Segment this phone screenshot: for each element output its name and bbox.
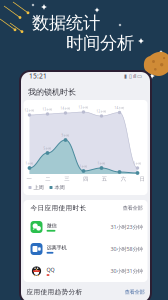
staticText: 时间分析 — [66, 32, 134, 54]
staticText: 14小时 — [60, 107, 70, 110]
staticText: 今日应用使用时长 — [30, 204, 86, 212]
staticText: QQ — [46, 266, 54, 273]
staticText: 13小时 — [42, 108, 52, 111]
staticText: 微信 — [46, 222, 56, 229]
staticText: 12小时 — [24, 109, 34, 112]
button[interactable]: 远离手机 — [23, 238, 147, 260]
staticText: 31小时23分钟 — [110, 223, 142, 231]
button[interactable]: QQ — [23, 260, 147, 282]
staticText: 六 — [121, 176, 126, 182]
staticText: 查看全部 — [122, 205, 142, 211]
staticText: ▮ ▯ ıll ▭ — [124, 72, 142, 80]
staticText: 1小时 — [97, 162, 105, 165]
staticText: 上周 — [33, 184, 43, 191]
staticText: 1小时 — [79, 165, 87, 168]
button[interactable]: 微信 — [23, 216, 147, 238]
staticText: 数据统计 — [32, 12, 100, 34]
staticText: 9小时 — [61, 134, 69, 137]
staticText: 1小时 — [133, 162, 141, 165]
staticText: 一 — [26, 176, 31, 182]
staticText: 本周 — [54, 184, 64, 191]
staticText: 三 — [64, 176, 69, 182]
staticText: 15:21 — [29, 72, 47, 80]
staticText: 应用使用趋势分析 — [26, 288, 82, 296]
staticText: 二 — [45, 176, 50, 182]
staticText: 我的锁机时长 — [28, 87, 76, 97]
staticText: 30小时58分钟 — [110, 245, 142, 253]
staticText: 日 — [139, 176, 144, 182]
staticText: 12小时 — [96, 110, 106, 113]
staticText: 远离手机 — [46, 244, 66, 251]
staticText: 30小时31分钟 — [110, 267, 142, 275]
staticText: 14小时 — [114, 106, 124, 110]
staticText: 1小时 — [25, 162, 33, 165]
staticText: 五 — [102, 176, 107, 182]
staticText: 13小时 — [78, 106, 88, 109]
staticText: 四 — [83, 176, 88, 182]
staticText: 查看全部 — [124, 289, 144, 295]
button[interactable]: 查看全部 — [122, 205, 147, 211]
staticText: 5小时 — [43, 147, 51, 150]
